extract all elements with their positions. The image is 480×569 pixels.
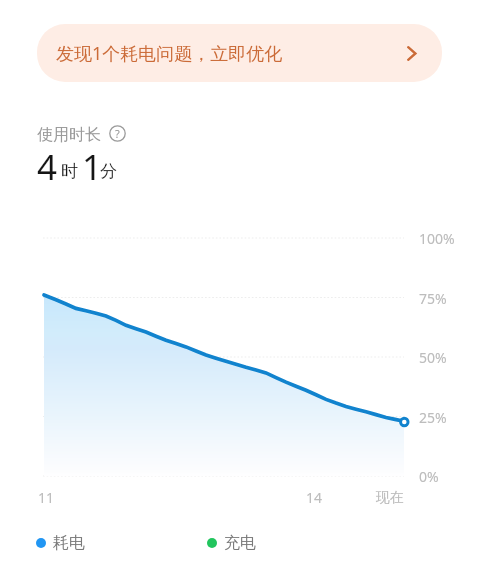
- staticText: 耗电: [53, 533, 85, 553]
- staticText: 11: [38, 488, 55, 507]
- button[interactable]: 发现1个耗电问题，立即优化: [37, 24, 442, 82]
- button[interactable]: 充电: [207, 533, 256, 553]
- staticText: 现在: [376, 489, 404, 507]
- staticText: ?: [115, 126, 120, 141]
- staticText: 0%: [419, 467, 439, 486]
- staticText: 使用时长: [37, 125, 101, 145]
- staticText: 4: [37, 143, 58, 191]
- staticText: 50%: [419, 348, 447, 367]
- button[interactable]: 耗电: [36, 533, 85, 553]
- staticText: 75%: [419, 289, 447, 308]
- staticText: 100%: [419, 229, 455, 248]
- button[interactable]: Help: [109, 125, 126, 142]
- staticText: 充电: [224, 533, 256, 553]
- staticText: 发现1个耗电问题，立即优化: [56, 41, 283, 66]
- staticText: 时: [61, 161, 78, 182]
- staticText: 1: [82, 143, 103, 191]
- staticText: 14: [306, 488, 323, 507]
- staticText: 25%: [419, 408, 447, 427]
- staticText: 分: [100, 161, 117, 182]
